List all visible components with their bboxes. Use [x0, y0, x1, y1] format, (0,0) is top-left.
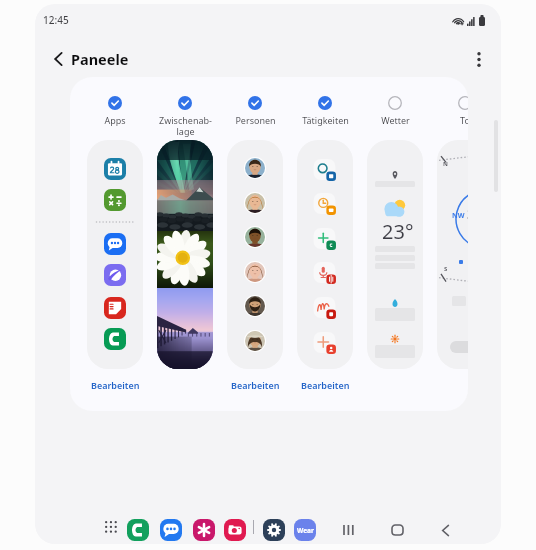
staticText: N — [443, 160, 448, 168]
staticText: Apps — [104, 114, 126, 126]
button[interactable]: To — [430, 96, 468, 126]
staticText: Tätigkeiten — [302, 114, 349, 126]
button[interactable]: More options — [462, 42, 496, 76]
button[interactable]: NW — [437, 140, 468, 369]
staticText: 23° — [382, 218, 414, 245]
staticText: Bearbeiten — [231, 379, 280, 391]
staticText: 12:45 — [43, 13, 69, 27]
button[interactable] — [157, 140, 213, 369]
button[interactable]: All apps — [99, 515, 121, 537]
button[interactable] — [87, 140, 143, 369]
button[interactable]: Zwischenab- lage — [150, 96, 220, 137]
button[interactable]: Camera — [224, 519, 246, 541]
button[interactable] — [297, 140, 353, 369]
button[interactable]: Tätigkeiten — [290, 96, 360, 126]
button[interactable]: Settings — [263, 519, 285, 541]
button[interactable]: Bearbeiten — [220, 376, 290, 394]
button[interactable]: Messages — [160, 519, 182, 541]
button[interactable]: Phone — [127, 519, 149, 541]
button[interactable]: Recents — [334, 516, 362, 544]
staticText: 3 — [467, 206, 468, 222]
staticText: NW — [452, 211, 465, 221]
button[interactable]: Bearbeiten — [290, 376, 360, 394]
button[interactable]: Apps — [80, 96, 150, 126]
button[interactable]: Wetter — [360, 96, 430, 126]
staticText: S — [444, 265, 448, 273]
staticText: Wear — [297, 526, 314, 535]
button[interactable]: Back — [41, 42, 75, 76]
staticText: Paneele — [71, 49, 129, 69]
button[interactable]: 23° — [367, 140, 423, 369]
button[interactable] — [227, 140, 283, 369]
staticText: Wetter — [381, 114, 410, 126]
staticText: Bearbeiten — [91, 379, 140, 391]
staticText: Zwischenab- lage — [159, 114, 212, 137]
button[interactable]: Home — [383, 516, 411, 544]
staticText: To — [460, 114, 468, 126]
staticText: Personen — [235, 114, 276, 126]
button[interactable]: Wear — [294, 519, 316, 541]
button[interactable]: Back — [431, 516, 459, 544]
button[interactable]: Personen — [220, 96, 290, 126]
button[interactable]: Bearbeiten — [80, 376, 150, 394]
button[interactable]: Gallery — [193, 519, 215, 541]
staticText: Bearbeiten — [301, 379, 350, 391]
